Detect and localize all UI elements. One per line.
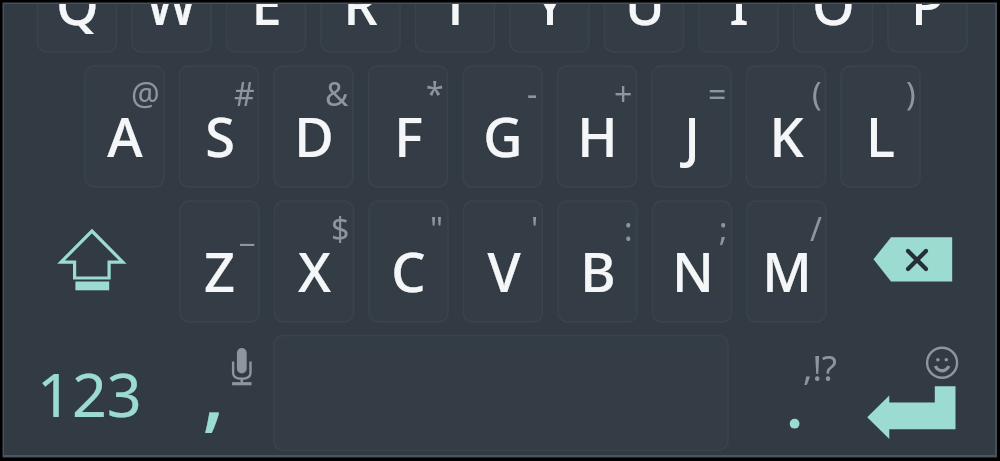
staticText: - bbox=[527, 72, 538, 116]
staticText: L bbox=[866, 99, 895, 173]
button[interactable]: : bbox=[558, 201, 637, 322]
button[interactable]: Y bbox=[510, 0, 589, 52]
button[interactable]: I bbox=[699, 0, 778, 52]
staticText: X bbox=[298, 234, 331, 308]
button[interactable]: + bbox=[558, 66, 637, 187]
button[interactable]: O bbox=[794, 0, 873, 52]
button[interactable]: Period, punctuation bbox=[735, 336, 850, 452]
button[interactable]: Comma, voice input bbox=[180, 336, 272, 452]
staticText: = bbox=[708, 72, 727, 116]
button[interactable]: / bbox=[747, 201, 826, 322]
staticText: H bbox=[577, 99, 618, 173]
staticText: * bbox=[426, 72, 444, 116]
staticText: / bbox=[810, 207, 822, 251]
staticText: + bbox=[614, 72, 633, 116]
staticText: " bbox=[430, 207, 444, 251]
staticText: R bbox=[343, 0, 378, 41]
staticText: P bbox=[911, 0, 944, 41]
staticText: B bbox=[580, 234, 616, 308]
button[interactable]: P bbox=[888, 0, 967, 52]
staticText: A bbox=[107, 99, 143, 173]
button[interactable]: & bbox=[274, 66, 353, 187]
staticText: S bbox=[205, 99, 235, 173]
button[interactable]: U bbox=[605, 0, 684, 52]
staticText: @ bbox=[131, 72, 160, 116]
staticText: 123 bbox=[37, 352, 142, 435]
staticText: Q bbox=[56, 0, 99, 41]
staticText: C bbox=[391, 234, 426, 308]
staticText: Y bbox=[534, 0, 566, 41]
button[interactable]: Q bbox=[38, 0, 117, 52]
staticText: # bbox=[234, 72, 255, 116]
button[interactable]: $ bbox=[275, 201, 354, 322]
staticText: W bbox=[146, 0, 197, 41]
staticText: O bbox=[812, 0, 855, 41]
button[interactable]: @ bbox=[85, 66, 164, 187]
button[interactable]: ( bbox=[747, 66, 826, 187]
staticText: G bbox=[483, 99, 523, 173]
staticText: U bbox=[625, 0, 665, 41]
button[interactable]: Enter bbox=[850, 336, 995, 452]
button[interactable]: ' bbox=[464, 201, 543, 322]
staticText: D bbox=[294, 99, 334, 173]
staticText: K bbox=[769, 99, 804, 173]
staticText: Z bbox=[204, 234, 235, 308]
staticText: V bbox=[487, 234, 521, 308]
button[interactable]: T bbox=[416, 0, 495, 52]
button[interactable]: 123 bbox=[8, 336, 178, 452]
staticText: : bbox=[624, 207, 633, 251]
staticText: , bbox=[202, 332, 225, 446]
button[interactable]: " bbox=[369, 201, 448, 322]
staticText: J bbox=[684, 99, 700, 173]
button[interactable]: = bbox=[652, 66, 731, 187]
button[interactable]: R bbox=[321, 0, 400, 52]
button[interactable]: W bbox=[132, 0, 211, 52]
button[interactable]: ) bbox=[841, 66, 920, 187]
staticText: & bbox=[325, 72, 349, 116]
staticText: ,!? bbox=[803, 344, 837, 392]
button[interactable]: * bbox=[369, 66, 448, 187]
staticText: M bbox=[762, 234, 812, 308]
staticText: ; bbox=[719, 207, 728, 251]
staticText: T bbox=[440, 0, 471, 41]
button[interactable]: E bbox=[227, 0, 306, 52]
staticText: I bbox=[729, 0, 749, 41]
staticText: E bbox=[251, 0, 282, 41]
staticText: ' bbox=[531, 207, 539, 251]
button[interactable]: Backspace bbox=[840, 200, 990, 319]
staticText: ) bbox=[906, 72, 916, 116]
button[interactable]: - bbox=[463, 66, 542, 187]
staticText: N bbox=[672, 234, 714, 308]
button[interactable]: Shift bbox=[10, 200, 170, 319]
staticText: ( bbox=[812, 72, 822, 116]
button[interactable]: # bbox=[180, 66, 259, 187]
button[interactable]: _ bbox=[180, 201, 259, 322]
staticText: _ bbox=[240, 207, 255, 251]
button[interactable]: ; bbox=[653, 201, 732, 322]
staticText: $ bbox=[331, 207, 350, 251]
staticText: F bbox=[394, 99, 423, 173]
